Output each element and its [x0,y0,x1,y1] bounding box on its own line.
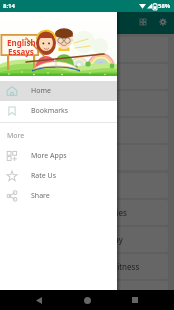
staticText: Bookmarks [31,106,69,116]
button[interactable]: Value of Time [6,281,168,306]
button[interactable]: Grid view [133,12,153,34]
button[interactable]: Bookmarks [0,101,117,121]
staticText: My Best Friend [14,44,70,55]
staticText: My School [14,71,53,82]
button[interactable]: Home [78,291,96,309]
staticText: My Daily Routine and Hobbies [14,207,127,218]
staticText: English [7,37,36,48]
button[interactable]: Share [0,186,117,206]
button[interactable]: Importance of Health and Fitness [6,254,168,279]
button[interactable]: Back [30,291,48,309]
staticText: Knowledge is Power in Today [14,234,123,245]
button[interactable]: My School [6,64,168,89]
staticText: More Apps [31,151,67,161]
staticText: 8:14 [3,2,15,10]
button[interactable]: Recent apps [126,291,144,309]
button[interactable]: My Favourite Book [6,145,168,170]
button[interactable]: More Apps [0,146,117,166]
staticText: Rate Us [31,171,57,181]
staticText: Share [31,191,50,201]
button[interactable]: Settings [153,12,173,34]
staticText: My Mother [14,98,56,109]
staticText: Home [31,86,51,96]
staticText: A Rainy Day [14,125,59,136]
staticText: Value of Time [14,288,65,299]
button[interactable]: My Best Friend [6,37,168,62]
button[interactable]: Importance of Trees [6,173,168,198]
staticText: More [7,131,25,141]
button[interactable]: My Daily Routine and Hobbies [6,200,168,225]
button[interactable]: Rate Us [0,166,117,186]
button[interactable]: A Rainy Day [6,118,168,143]
staticText: 58% [158,2,171,10]
staticText: Importance of Health and Fitness [14,261,140,272]
button[interactable]: Knowledge is Power in Today [6,227,168,252]
button[interactable]: My Mother [6,91,168,116]
button[interactable]: Home [0,81,117,101]
staticText: My Favourite Book [14,152,84,163]
staticText: Essays [8,46,34,57]
